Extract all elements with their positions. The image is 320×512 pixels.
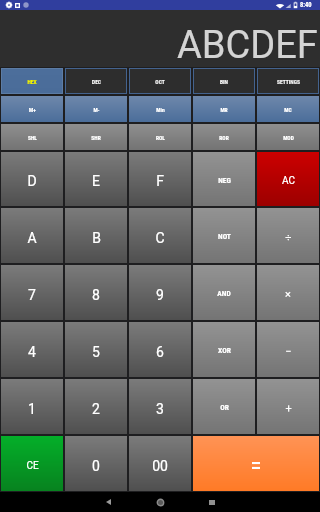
- button[interactable]: 5: [65, 322, 127, 377]
- staticText: MOD: [283, 135, 294, 141]
- staticText: ÷: [285, 231, 292, 244]
- button[interactable]: F: [129, 152, 191, 206]
- staticText: CE: [26, 460, 39, 472]
- button[interactable]: B: [65, 208, 127, 263]
- button[interactable]: 9: [129, 265, 191, 320]
- staticText: F: [156, 173, 164, 189]
- staticText: NEG: [218, 176, 231, 185]
- button[interactable]: 8: [65, 265, 127, 320]
- button[interactable]: OCT: [129, 68, 191, 94]
- staticText: ROL: [156, 135, 165, 141]
- button[interactable]: Home: [134, 492, 186, 512]
- staticText: C: [155, 230, 165, 246]
- button[interactable]: E: [65, 152, 127, 206]
- button[interactable]: 1: [1, 379, 63, 434]
- staticText: DEC: [92, 79, 101, 85]
- button[interactable]: Back: [82, 492, 134, 512]
- staticText: MC: [284, 107, 292, 113]
- button[interactable]: 6: [129, 322, 191, 377]
- staticText: 00: [152, 458, 168, 474]
- staticText: ROR: [219, 135, 229, 141]
- staticText: B: [92, 230, 101, 246]
- button[interactable]: ÷: [257, 208, 319, 263]
- button[interactable]: C: [129, 208, 191, 263]
- button[interactable]: M+: [1, 96, 63, 122]
- staticText: 4: [28, 344, 36, 360]
- staticText: A: [27, 230, 37, 246]
- staticText: +: [285, 402, 292, 415]
- button[interactable]: D: [1, 152, 63, 206]
- button[interactable]: A: [1, 208, 63, 263]
- staticText: OCT: [155, 79, 165, 85]
- button[interactable]: Equals: [193, 436, 319, 491]
- staticText: M+: [29, 107, 36, 113]
- staticText: 6: [156, 344, 164, 360]
- button[interactable]: NEG: [193, 152, 255, 206]
- button[interactable]: ROR: [193, 124, 255, 150]
- button[interactable]: 7: [1, 265, 63, 320]
- staticText: OR: [220, 403, 229, 412]
- staticText: SETTINGS: [277, 79, 300, 85]
- button[interactable]: NOT: [193, 208, 255, 263]
- staticText: Min: [156, 107, 165, 113]
- button[interactable]: XOR: [193, 322, 255, 377]
- button[interactable]: MC: [257, 96, 319, 122]
- staticText: 2: [92, 401, 100, 417]
- staticText: 7: [28, 287, 36, 303]
- staticText: SHL: [28, 135, 37, 141]
- button[interactable]: MOD: [257, 124, 319, 150]
- staticText: E: [92, 173, 100, 189]
- staticText: D: [27, 173, 37, 189]
- button[interactable]: SHR: [65, 124, 127, 150]
- button[interactable]: SHL: [1, 124, 63, 150]
- button[interactable]: Min: [129, 96, 191, 122]
- staticText: 8: [92, 287, 100, 303]
- staticText: AND: [217, 289, 231, 298]
- button[interactable]: 3: [129, 379, 191, 434]
- staticText: 1: [28, 401, 36, 417]
- staticText: NOT: [218, 232, 231, 241]
- button[interactable]: ×: [257, 265, 319, 320]
- staticText: MR: [220, 107, 228, 113]
- button[interactable]: 4: [1, 322, 63, 377]
- button[interactable]: HEX: [1, 68, 63, 94]
- staticText: BIN: [220, 79, 228, 85]
- staticText: HEX: [27, 79, 37, 85]
- button[interactable]: AND: [193, 265, 255, 320]
- staticText: 3: [156, 401, 164, 417]
- staticText: XOR: [218, 346, 231, 355]
- button[interactable]: CE: [1, 436, 63, 491]
- button[interactable]: −: [257, 322, 319, 377]
- button[interactable]: SETTINGS: [257, 68, 319, 94]
- staticText: 8:40: [300, 1, 312, 9]
- button[interactable]: +: [257, 379, 319, 434]
- button[interactable]: 2: [65, 379, 127, 434]
- staticText: SHR: [91, 135, 101, 141]
- button[interactable]: AC: [257, 152, 319, 206]
- staticText: 5: [92, 344, 100, 360]
- staticText: ABCDEF: [177, 23, 318, 68]
- button[interactable]: 0: [65, 436, 127, 491]
- button[interactable]: M-: [65, 96, 127, 122]
- button[interactable]: 00: [129, 436, 191, 491]
- staticText: ×: [285, 288, 291, 301]
- staticText: 0: [92, 458, 100, 474]
- button[interactable]: DEC: [65, 68, 127, 94]
- button[interactable]: MR: [193, 96, 255, 122]
- button[interactable]: OR: [193, 379, 255, 434]
- button[interactable]: Recent apps: [186, 492, 238, 512]
- staticText: M-: [93, 107, 100, 113]
- staticText: AC: [282, 175, 295, 187]
- staticText: −: [285, 345, 292, 358]
- button[interactable]: ROL: [129, 124, 191, 150]
- staticText: 9: [156, 287, 164, 303]
- button[interactable]: BIN: [193, 68, 255, 94]
